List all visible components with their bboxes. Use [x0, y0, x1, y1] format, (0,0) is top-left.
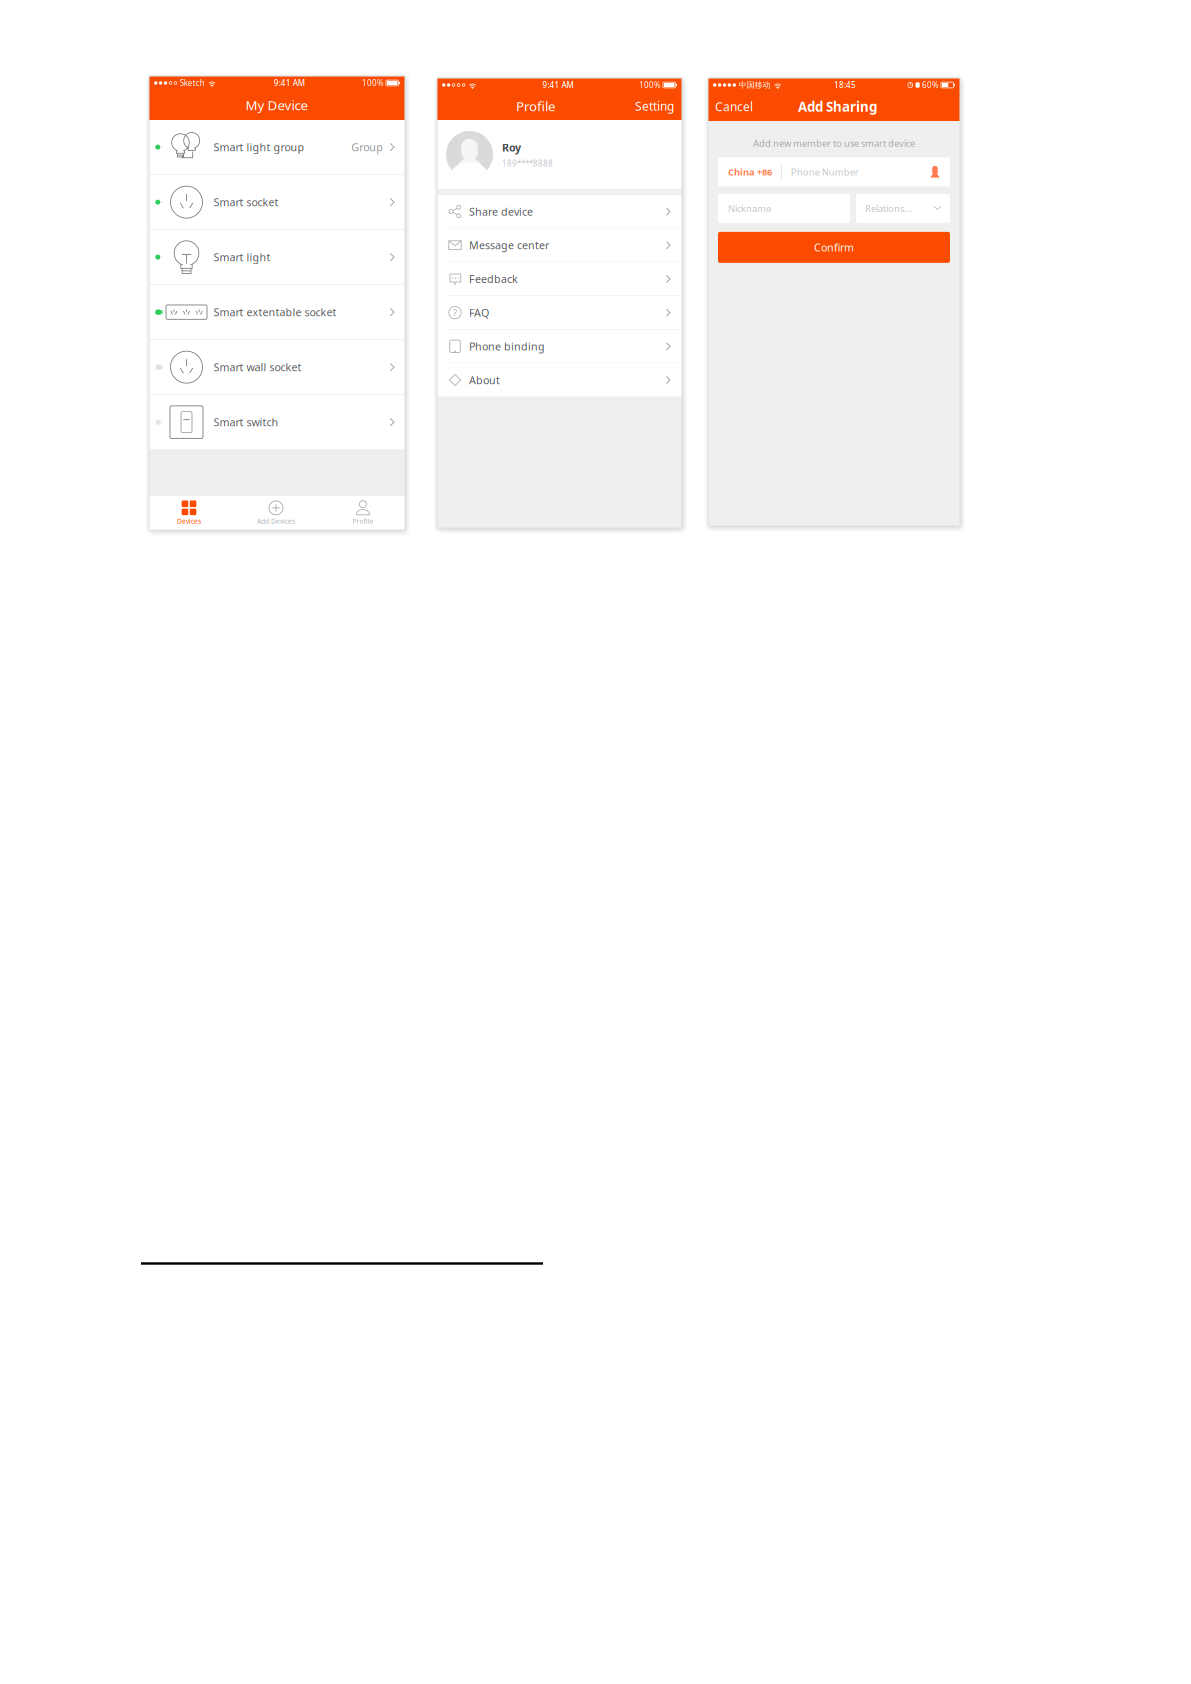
- button[interactable]: China +86: [718, 157, 781, 186]
- staticText: Smart wall socket: [213, 360, 301, 374]
- button[interactable]: Phone Number: [782, 157, 924, 186]
- button[interactable]: Devices: [150, 496, 228, 530]
- staticText: Profile: [352, 517, 373, 526]
- staticText: Smart light group: [213, 140, 304, 154]
- staticText: China +86: [728, 166, 772, 178]
- button[interactable]: Smart socket: [149, 175, 405, 229]
- button[interactable]: Cancel: [708, 98, 753, 114]
- button[interactable]: Smart light group: [149, 120, 405, 174]
- staticText: Smart extentable socket: [213, 305, 336, 319]
- staticText: Confirm: [814, 240, 854, 254]
- staticText: Nickname: [728, 202, 771, 215]
- staticText: 100%: [639, 80, 661, 90]
- staticText: Relations...: [865, 202, 913, 215]
- staticText: Add Sharing: [798, 98, 877, 115]
- staticText: 18:45: [834, 80, 856, 90]
- button[interactable]: Relations...: [856, 194, 950, 223]
- staticText: Add new member to use smart device: [753, 137, 915, 149]
- staticText: Share device: [469, 204, 533, 219]
- button[interactable]: Smart light: [149, 230, 405, 284]
- staticText: Profile: [516, 97, 556, 115]
- staticText: FAQ: [469, 305, 489, 320]
- staticText: Add Devices: [257, 517, 295, 526]
- button[interactable]: Profile: [324, 496, 402, 530]
- button[interactable]: Smart switch: [149, 395, 405, 449]
- button[interactable]: Choose from contacts: [924, 166, 950, 178]
- button[interactable]: About: [437, 363, 682, 396]
- staticText: Feedback: [469, 272, 518, 286]
- staticText: Devices: [177, 517, 201, 526]
- button[interactable]: ?: [437, 296, 682, 329]
- staticText: 60%: [922, 80, 939, 90]
- button[interactable]: Share device: [437, 195, 682, 228]
- button[interactable]: Feedback: [437, 262, 682, 295]
- staticText: Smart socket: [213, 195, 278, 209]
- staticText: Phone binding: [469, 339, 545, 353]
- staticText: 100%: [362, 78, 384, 88]
- staticText: 9:41 AM: [274, 78, 305, 88]
- button[interactable]: Phone binding: [437, 330, 682, 363]
- staticText: Roy: [502, 140, 521, 155]
- staticText: Message center: [469, 238, 549, 252]
- button[interactable]: Setting: [635, 98, 682, 114]
- staticText: ?: [453, 306, 457, 319]
- staticText: Smart switch: [213, 415, 278, 429]
- staticText: 189****8888: [502, 158, 553, 169]
- button[interactable]: Message center: [437, 229, 682, 262]
- staticText: Sketch: [180, 78, 205, 88]
- button[interactable]: Smart extentable socket: [149, 285, 405, 339]
- staticText: 中国移动: [739, 80, 771, 90]
- button[interactable]: Add Devices: [237, 496, 315, 530]
- staticText: Setting: [635, 98, 674, 114]
- button[interactable]: Smart wall socket: [149, 340, 405, 394]
- staticText: 9:41 AM: [543, 80, 574, 90]
- button[interactable]: Nickname: [718, 194, 850, 223]
- button[interactable]: Confirm: [718, 232, 950, 263]
- staticText: My Device: [245, 96, 308, 114]
- staticText: Smart light: [213, 250, 270, 264]
- staticText: About: [469, 373, 500, 387]
- staticText: Phone Number: [791, 166, 859, 178]
- staticText: Group: [351, 140, 383, 154]
- staticText: Cancel: [715, 98, 753, 114]
